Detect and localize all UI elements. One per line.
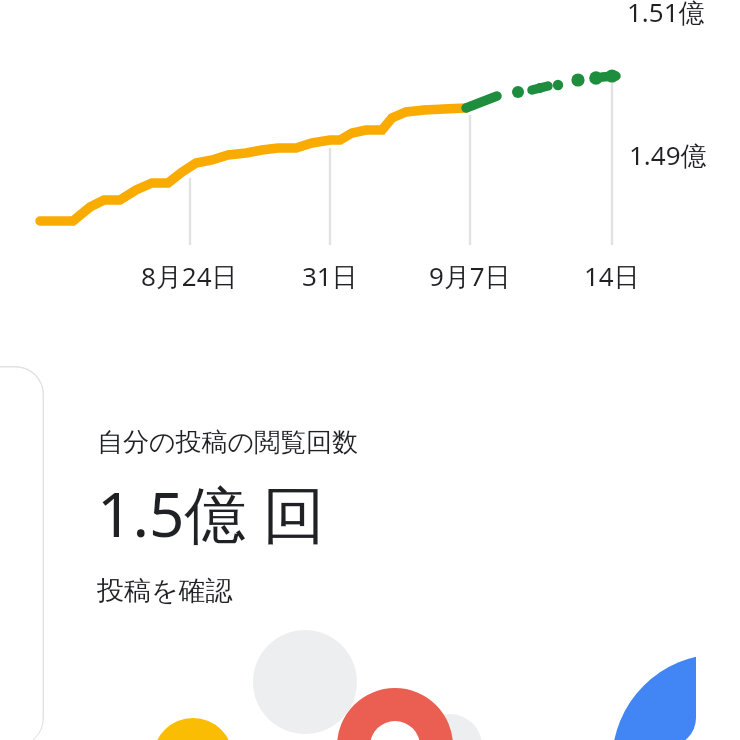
staticText: 8月24日 xyxy=(141,258,238,294)
staticText: 自分の投稿の閲覧回数 xyxy=(97,426,359,459)
button[interactable] xyxy=(0,366,44,740)
staticText: 1.51億 xyxy=(627,0,705,30)
staticText: 1.49億 xyxy=(629,137,707,173)
staticText: 14日 xyxy=(584,258,640,294)
button[interactable]: 自分の投稿の閲覧回数 xyxy=(60,364,696,740)
staticText: 1.5億 回 xyxy=(97,471,325,556)
staticText: 31日 xyxy=(302,258,358,294)
button[interactable]: 投稿を確認 xyxy=(97,574,233,608)
button[interactable]: 閲覧回数の推移グラフ xyxy=(0,0,740,300)
staticText: 9月7日 xyxy=(429,258,511,294)
